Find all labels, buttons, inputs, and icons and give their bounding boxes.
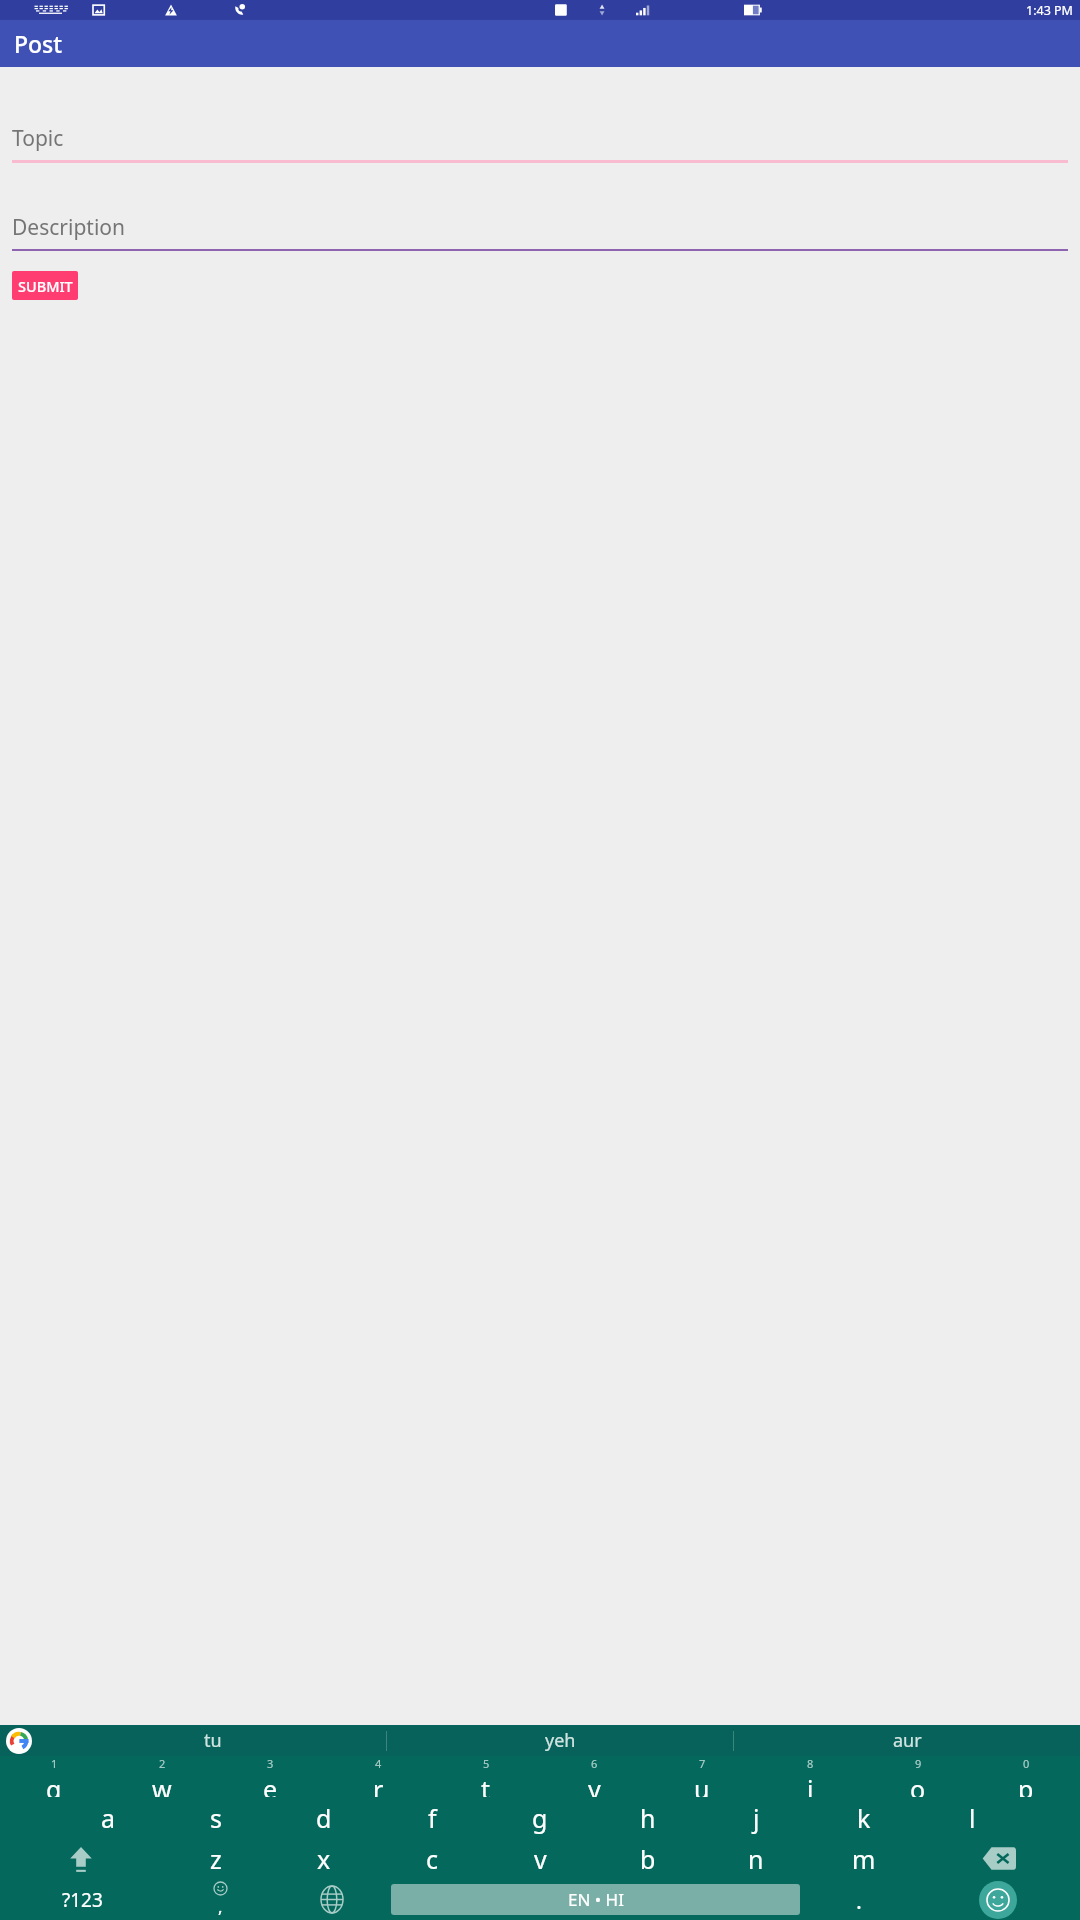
button[interactable]: k <box>810 1797 918 1838</box>
button[interactable]: 9 <box>864 1756 972 1797</box>
button[interactable]: Emoji <box>915 1879 1080 1920</box>
button[interactable]: 7 <box>648 1756 756 1797</box>
button[interactable]: a <box>54 1797 162 1838</box>
button[interactable]: Emoji and comma <box>164 1879 276 1920</box>
staticText: 0 <box>1023 1756 1030 1771</box>
button[interactable]: m <box>810 1838 918 1879</box>
button[interactable]: g <box>486 1797 594 1838</box>
staticText: r <box>373 1772 384 1797</box>
button[interactable]: v <box>486 1838 594 1879</box>
button[interactable]: aur <box>734 1725 1080 1756</box>
staticText: f <box>428 1801 437 1835</box>
staticText: d <box>316 1801 332 1835</box>
staticText: p <box>1018 1772 1034 1797</box>
button[interactable]: 3 <box>216 1756 324 1797</box>
button[interactable]: b <box>594 1838 702 1879</box>
staticText: z <box>210 1842 222 1876</box>
staticText: tu <box>204 1728 222 1753</box>
button[interactable]: n <box>702 1838 810 1879</box>
staticText: 4 <box>375 1756 382 1771</box>
button[interactable]: 2 <box>108 1756 216 1797</box>
staticText: a <box>101 1801 116 1835</box>
staticText: 1:43 PM <box>1026 2 1073 19</box>
button[interactable]: ?123 <box>0 1879 164 1920</box>
staticText: h <box>640 1801 656 1835</box>
button[interactable]: f <box>378 1797 486 1838</box>
button[interactable]: 5 <box>432 1756 540 1797</box>
staticText: l <box>969 1801 976 1835</box>
button[interactable]: EN • HI <box>391 1884 800 1915</box>
button[interactable]: Topic <box>12 121 1068 163</box>
staticText: Post <box>14 28 63 59</box>
staticText: q <box>46 1772 62 1797</box>
button[interactable]: SUBMIT <box>12 271 78 300</box>
staticText: . <box>856 1885 862 1915</box>
staticText: y <box>588 1772 601 1797</box>
button[interactable]: s <box>162 1797 270 1838</box>
button[interactable]: 8 <box>756 1756 864 1797</box>
staticText: 8 <box>807 1756 814 1771</box>
button[interactable]: Shift <box>0 1838 162 1879</box>
staticText: EN • HI <box>568 1888 624 1911</box>
staticText: ?123 <box>62 1887 103 1913</box>
staticText: 2 <box>159 1756 166 1771</box>
button[interactable]: 1 <box>0 1756 108 1797</box>
button[interactable]: Description <box>12 210 1068 251</box>
staticText: 1 <box>51 1756 58 1771</box>
button[interactable]: 0 <box>972 1756 1080 1797</box>
staticText: u <box>694 1772 710 1797</box>
staticText: 7 <box>699 1756 706 1771</box>
staticText: b <box>640 1842 656 1876</box>
button[interactable]: z <box>162 1838 270 1879</box>
staticText: aur <box>893 1728 922 1753</box>
staticText: t <box>481 1772 491 1797</box>
button[interactable]: l <box>918 1797 1026 1838</box>
staticText: g <box>532 1801 548 1835</box>
staticText: 5 <box>483 1756 490 1771</box>
button[interactable]: yeh <box>387 1725 733 1756</box>
staticText: j <box>753 1801 760 1835</box>
button[interactable]: c <box>378 1838 486 1879</box>
button[interactable]: 6 <box>540 1756 648 1797</box>
button[interactable]: Change language <box>276 1879 388 1920</box>
staticText: 6 <box>591 1756 598 1771</box>
staticText: s <box>210 1801 222 1835</box>
staticText: k <box>857 1801 871 1835</box>
staticText: 3 <box>267 1756 274 1771</box>
button[interactable]: j <box>702 1797 810 1838</box>
staticText: SUBMIT <box>18 276 73 296</box>
staticText: c <box>426 1842 439 1876</box>
button[interactable]: Google <box>6 1728 32 1754</box>
staticText: 9 <box>915 1756 922 1771</box>
button[interactable]: tu <box>40 1725 386 1756</box>
staticText: w <box>152 1772 172 1797</box>
staticText: x <box>317 1842 331 1876</box>
button[interactable]: x <box>270 1838 378 1879</box>
staticText: e <box>263 1772 278 1797</box>
staticText: , <box>218 1895 223 1918</box>
staticText: v <box>534 1842 547 1876</box>
staticText: m <box>852 1842 876 1876</box>
button[interactable]: h <box>594 1797 702 1838</box>
button[interactable]: 4 <box>324 1756 432 1797</box>
staticText: i <box>807 1772 814 1797</box>
staticText: Description <box>12 213 126 242</box>
button[interactable]: . <box>803 1879 915 1920</box>
button[interactable]: d <box>270 1797 378 1838</box>
button[interactable]: Backspace <box>918 1838 1080 1879</box>
staticText: yeh <box>545 1728 576 1753</box>
staticText: Topic <box>12 124 64 153</box>
staticText: n <box>748 1842 764 1876</box>
staticText: o <box>910 1772 926 1797</box>
